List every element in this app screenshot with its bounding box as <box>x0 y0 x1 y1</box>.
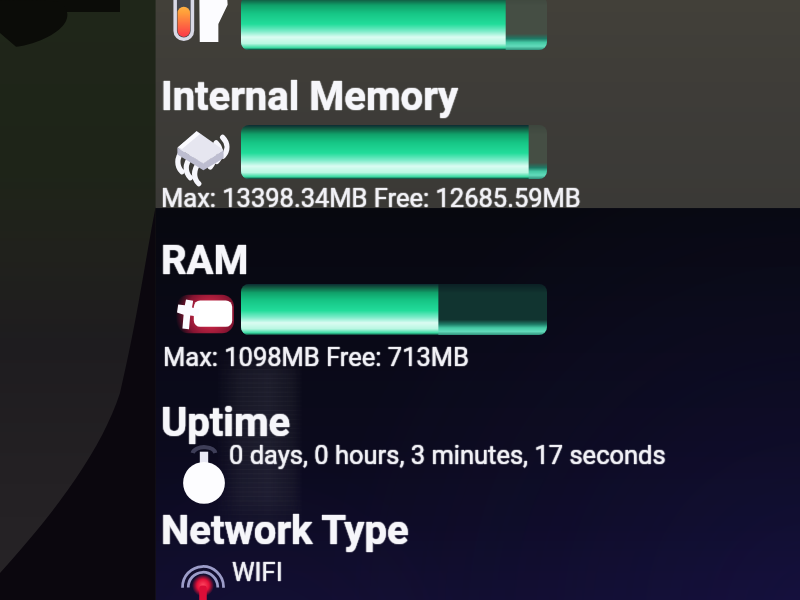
staticText: Internal Memory <box>160 73 458 120</box>
staticText: WIFI <box>232 557 283 587</box>
staticText: RAM <box>162 237 250 284</box>
staticText: WIFI <box>232 556 283 586</box>
staticText: Uptime <box>161 399 291 446</box>
button[interactable] <box>241 125 547 179</box>
staticText: Network Type <box>162 507 410 554</box>
staticText: Network Type <box>161 508 409 555</box>
staticText: 0 days, 0 hours, 3 minutes, 17 seconds <box>229 440 666 470</box>
staticText: Network Type <box>160 507 408 554</box>
button[interactable]: RAM <box>174 294 234 334</box>
staticText: WIFI <box>232 558 283 588</box>
staticText: Max: 1098MB Free: 713MB <box>162 342 468 372</box>
staticText: 0 days, 0 hours, 3 minutes, 17 seconds <box>229 439 666 469</box>
staticText: Network Type <box>161 506 409 553</box>
button[interactable]: Network type <box>178 562 228 600</box>
staticText: Network Type <box>161 507 409 554</box>
staticText: Internal Memory <box>162 73 460 120</box>
staticText: Uptime <box>161 398 291 445</box>
staticText: WIFI <box>231 557 282 587</box>
staticText: Max: 1098MB Free: 713MB <box>163 342 469 372</box>
button[interactable] <box>241 284 547 335</box>
staticText: Internal Memory <box>161 72 459 119</box>
staticText: WIFI <box>233 557 284 587</box>
staticText: 0 days, 0 hours, 3 minutes, 17 seconds <box>230 440 667 470</box>
staticText: Max: 1098MB Free: 713MB <box>163 343 469 373</box>
button[interactable]: Uptime <box>182 446 226 506</box>
staticText: RAM <box>161 236 249 283</box>
staticText: Internal Memory <box>161 74 459 121</box>
staticText: Max: 13398.34MB Free: 12685.59MB <box>161 182 581 212</box>
button[interactable]: Battery temperature <box>170 0 232 50</box>
staticText: RAM <box>160 237 248 284</box>
staticText: Uptime <box>161 400 291 447</box>
staticText: Max: 1098MB Free: 713MB <box>163 341 469 371</box>
staticText: Max: 13398.34MB Free: 12685.59MB <box>160 183 580 213</box>
staticText: 0 days, 0 hours, 3 minutes, 17 seconds <box>229 441 666 471</box>
staticText: Uptime <box>162 399 292 446</box>
button[interactable] <box>241 0 547 50</box>
staticText: Max: 13398.34MB Free: 12685.59MB <box>161 183 581 213</box>
staticText: 0 days, 0 hours, 3 minutes, 17 seconds <box>228 440 665 470</box>
staticText: RAM <box>161 237 249 284</box>
staticText: Max: 13398.34MB Free: 12685.59MB <box>162 183 582 213</box>
staticText: RAM <box>161 238 249 285</box>
staticText: Max: 1098MB Free: 713MB <box>164 342 470 372</box>
staticText: Internal Memory <box>161 73 459 120</box>
staticText: Max: 13398.34MB Free: 12685.59MB <box>161 184 581 214</box>
button[interactable]: Internal memory <box>169 127 231 179</box>
staticText: Uptime <box>160 399 290 446</box>
